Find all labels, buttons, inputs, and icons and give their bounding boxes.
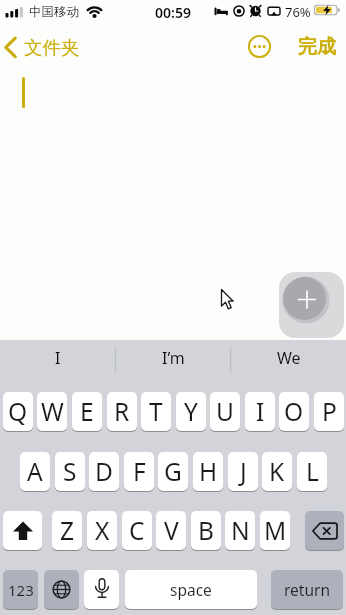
button[interactable] (305, 511, 344, 550)
button[interactable]: W (37, 392, 67, 431)
staticText: X (95, 514, 110, 547)
button[interactable]: Z (52, 511, 82, 550)
staticText: Z (60, 514, 75, 547)
button[interactable]: Y (176, 392, 206, 431)
staticText: Y (184, 395, 198, 428)
button[interactable]: N (225, 511, 255, 550)
staticText: U (216, 395, 234, 428)
button[interactable]: B (191, 511, 221, 550)
button[interactable]: A (20, 452, 50, 491)
staticText: I’m (162, 347, 185, 369)
button[interactable] (44, 570, 79, 609)
staticText: E (80, 395, 94, 428)
button[interactable]: P (314, 392, 344, 431)
staticText: 00:59 (155, 3, 191, 19)
button[interactable] (3, 511, 42, 550)
staticText: O (284, 395, 304, 428)
button[interactable]: I (245, 392, 275, 431)
button[interactable]: J (228, 452, 258, 491)
staticText: H (199, 455, 218, 488)
button[interactable]: U (210, 392, 240, 431)
staticText: S (63, 455, 77, 488)
staticText: return (284, 579, 330, 600)
staticText: L (306, 455, 319, 488)
button[interactable]: E (72, 392, 102, 431)
staticText: K (269, 455, 285, 488)
button[interactable]: L (297, 452, 327, 491)
button[interactable] (84, 570, 119, 609)
button[interactable] (248, 35, 271, 58)
button[interactable]: T (141, 392, 171, 431)
button[interactable]: H (193, 452, 223, 491)
button[interactable]: R (107, 392, 137, 431)
staticText: C (129, 514, 145, 547)
staticText: I (55, 347, 61, 369)
staticText: F (133, 455, 146, 488)
button[interactable]: I (10, 344, 105, 372)
staticText: B (198, 514, 214, 547)
staticText: 123 (8, 580, 34, 600)
button[interactable]: V (156, 511, 186, 550)
button[interactable]: M (260, 511, 290, 550)
button[interactable]: We (241, 344, 336, 372)
staticText: 中国移动 (29, 4, 79, 20)
staticText: N (231, 514, 250, 547)
button[interactable]: 完成 (290, 33, 343, 60)
button[interactable]: X (87, 511, 117, 550)
staticText: W (41, 395, 64, 428)
button[interactable]: space (125, 570, 257, 609)
button[interactable]: return (271, 570, 343, 609)
button[interactable]: G (158, 452, 188, 491)
button[interactable] (279, 272, 344, 338)
button[interactable]: 文件夹 (2, 33, 87, 61)
staticText: 76% (285, 3, 311, 17)
staticText: Q (8, 395, 28, 428)
staticText: I (256, 395, 265, 428)
staticText: A (27, 455, 43, 488)
staticText: 完成 (298, 35, 336, 59)
staticText: D (95, 455, 113, 488)
button[interactable]: 123 (3, 570, 38, 609)
button[interactable]: D (89, 452, 119, 491)
staticText: space (170, 579, 212, 600)
button[interactable]: K (262, 452, 292, 491)
button[interactable]: I’m (126, 344, 220, 372)
staticText: 文件夹 (24, 36, 80, 59)
staticText: M (264, 514, 287, 547)
staticText: R (114, 395, 130, 428)
button[interactable]: F (124, 452, 154, 491)
button[interactable]: S (55, 452, 85, 491)
button[interactable]: Q (3, 392, 33, 431)
button[interactable]: C (122, 511, 152, 550)
staticText: G (164, 455, 182, 488)
staticText: T (149, 395, 163, 428)
staticText: J (240, 455, 247, 488)
button[interactable]: O (279, 392, 309, 431)
staticText: We (277, 347, 301, 369)
staticText: P (322, 395, 337, 428)
staticText: V (164, 514, 179, 547)
